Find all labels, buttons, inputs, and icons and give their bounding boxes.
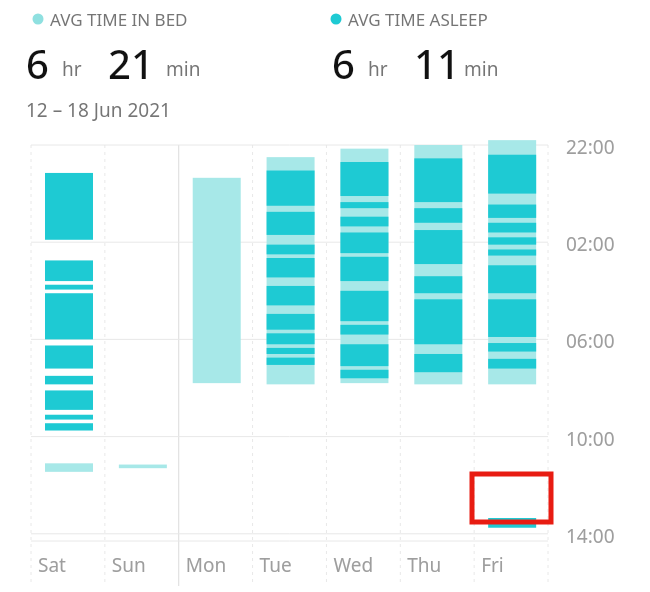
button[interactable]: Sleep chart, 12 to 18 June 2021 xyxy=(0,0,650,592)
